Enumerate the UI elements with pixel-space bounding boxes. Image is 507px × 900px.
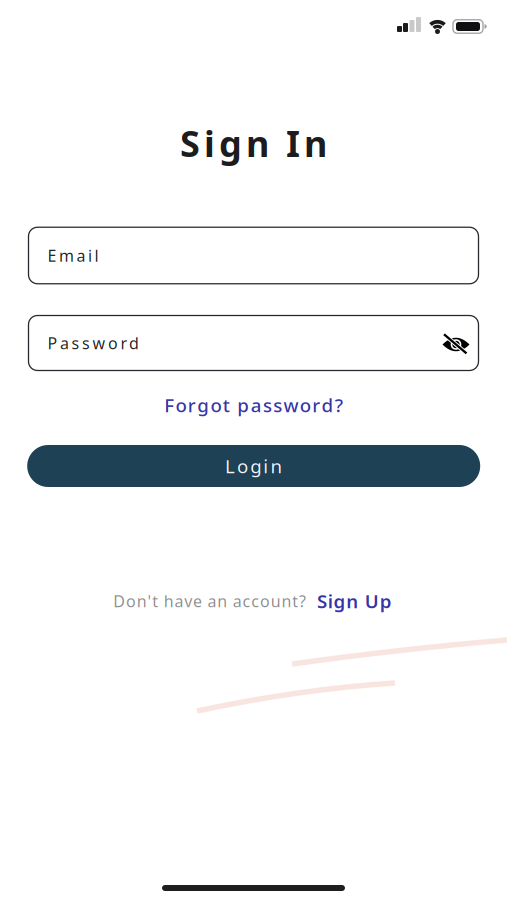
staticText: Password [47, 332, 139, 354]
button[interactable]: Login [27, 445, 480, 487]
staticText: Don't have an account? [113, 590, 306, 612]
staticText: Sign In [180, 119, 327, 167]
button[interactable]: Forgot password? [164, 393, 343, 417]
button[interactable]: Email [28, 227, 478, 284]
staticText: Sign Up [317, 589, 392, 613]
button[interactable]: Password [28, 315, 478, 370]
staticText: Login [225, 454, 282, 478]
staticText: Forgot password? [164, 393, 343, 417]
button[interactable]: Sign Up [317, 589, 392, 613]
staticText: Email [47, 245, 98, 266]
